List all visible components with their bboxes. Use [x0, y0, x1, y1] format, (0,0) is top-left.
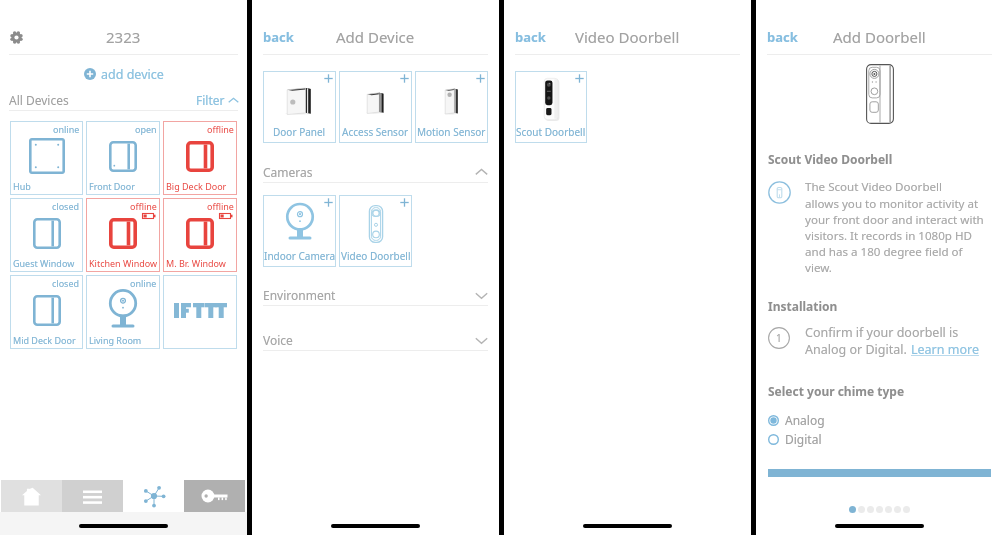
button[interactable]: Motion Sensor	[415, 71, 488, 143]
staticText: Front Door	[89, 180, 135, 192]
staticText: offline	[207, 200, 234, 212]
staticText: Analog or Digital.	[805, 341, 911, 358]
button[interactable]: offline	[163, 198, 237, 272]
staticText: Select your chime type	[768, 383, 905, 399]
staticText: Big Deck Door	[166, 180, 227, 192]
button[interactable]: Devices	[123, 480, 184, 512]
button[interactable]: add device	[0, 56, 247, 92]
staticText: M. Br. Window	[166, 257, 226, 269]
staticText: online	[53, 123, 80, 135]
staticText: 2323	[106, 27, 141, 47]
staticText: Digital	[785, 431, 822, 447]
staticText: closed	[52, 277, 80, 289]
staticText: online	[130, 277, 157, 289]
button[interactable]: online	[86, 275, 160, 349]
button[interactable]: Filter	[196, 92, 239, 108]
button[interactable]: closed	[10, 275, 83, 349]
staticText: Installation	[768, 298, 838, 314]
staticText: Voice	[263, 332, 293, 348]
button[interactable]: Menu	[62, 480, 123, 512]
staticText: Scout Doorbell	[516, 125, 586, 139]
button[interactable]: back	[263, 28, 294, 46]
button[interactable]: Analog	[768, 412, 825, 428]
button[interactable]: back	[767, 28, 798, 46]
staticText: Confirm if your doorbell is	[805, 324, 959, 341]
staticText: Environment	[263, 287, 336, 303]
staticText: Add Doorbell	[833, 27, 926, 47]
staticText: open	[135, 123, 157, 135]
button[interactable]: Learn more	[911, 341, 979, 358]
staticText: Access Sensor	[342, 125, 409, 139]
staticText: Cameras	[263, 164, 313, 180]
button[interactable]: Voice	[252, 329, 499, 351]
staticText: Living Room	[89, 334, 142, 346]
button[interactable]: offline	[163, 121, 237, 195]
button[interactable]: Environment	[252, 284, 499, 306]
button[interactable]: open	[86, 121, 160, 195]
staticText: Indoor Camera	[264, 249, 336, 263]
staticText: Guest Window	[13, 257, 75, 269]
staticText: Video Doorbell	[341, 249, 411, 263]
staticText: Motion Sensor	[417, 125, 486, 139]
staticText: Hub	[13, 180, 31, 192]
staticText: 1	[776, 331, 782, 345]
button[interactable]: offline	[86, 198, 160, 272]
button[interactable]: Scout Doorbell	[515, 71, 587, 143]
staticText: Door Panel	[273, 125, 326, 139]
staticText: add device	[101, 66, 164, 83]
staticText: Kitchen Window	[89, 257, 158, 269]
staticText: Analog	[785, 412, 825, 428]
staticText: Filter	[196, 92, 225, 108]
staticText: offline	[207, 123, 234, 135]
staticText: All Devices	[9, 92, 69, 108]
button[interactable]: online	[10, 121, 83, 195]
button[interactable]: Cameras	[252, 161, 499, 183]
button[interactable]: Settings	[4, 25, 28, 49]
button[interactable]: back	[515, 28, 546, 46]
button[interactable]: Video Doorbell	[339, 195, 412, 267]
button[interactable]: Indoor Camera	[263, 195, 336, 267]
button[interactable]: Door Panel	[263, 71, 336, 143]
staticText: Scout Video Doorbell	[768, 151, 893, 167]
button[interactable]	[163, 275, 237, 349]
staticText: Add Device	[336, 27, 415, 47]
button[interactable]: Lock	[184, 480, 245, 512]
button[interactable]: Digital	[768, 431, 822, 447]
staticText: offline	[130, 200, 157, 212]
button[interactable]: Home	[1, 480, 62, 512]
staticText: Video Doorbell	[575, 27, 680, 47]
staticText: closed	[52, 200, 80, 212]
staticText: Mid Deck Door	[13, 334, 76, 346]
button[interactable]: closed	[10, 198, 83, 272]
staticText: The Scout Video Doorbell allows you to m…	[805, 179, 984, 275]
button[interactable]: Access Sensor	[339, 71, 412, 143]
